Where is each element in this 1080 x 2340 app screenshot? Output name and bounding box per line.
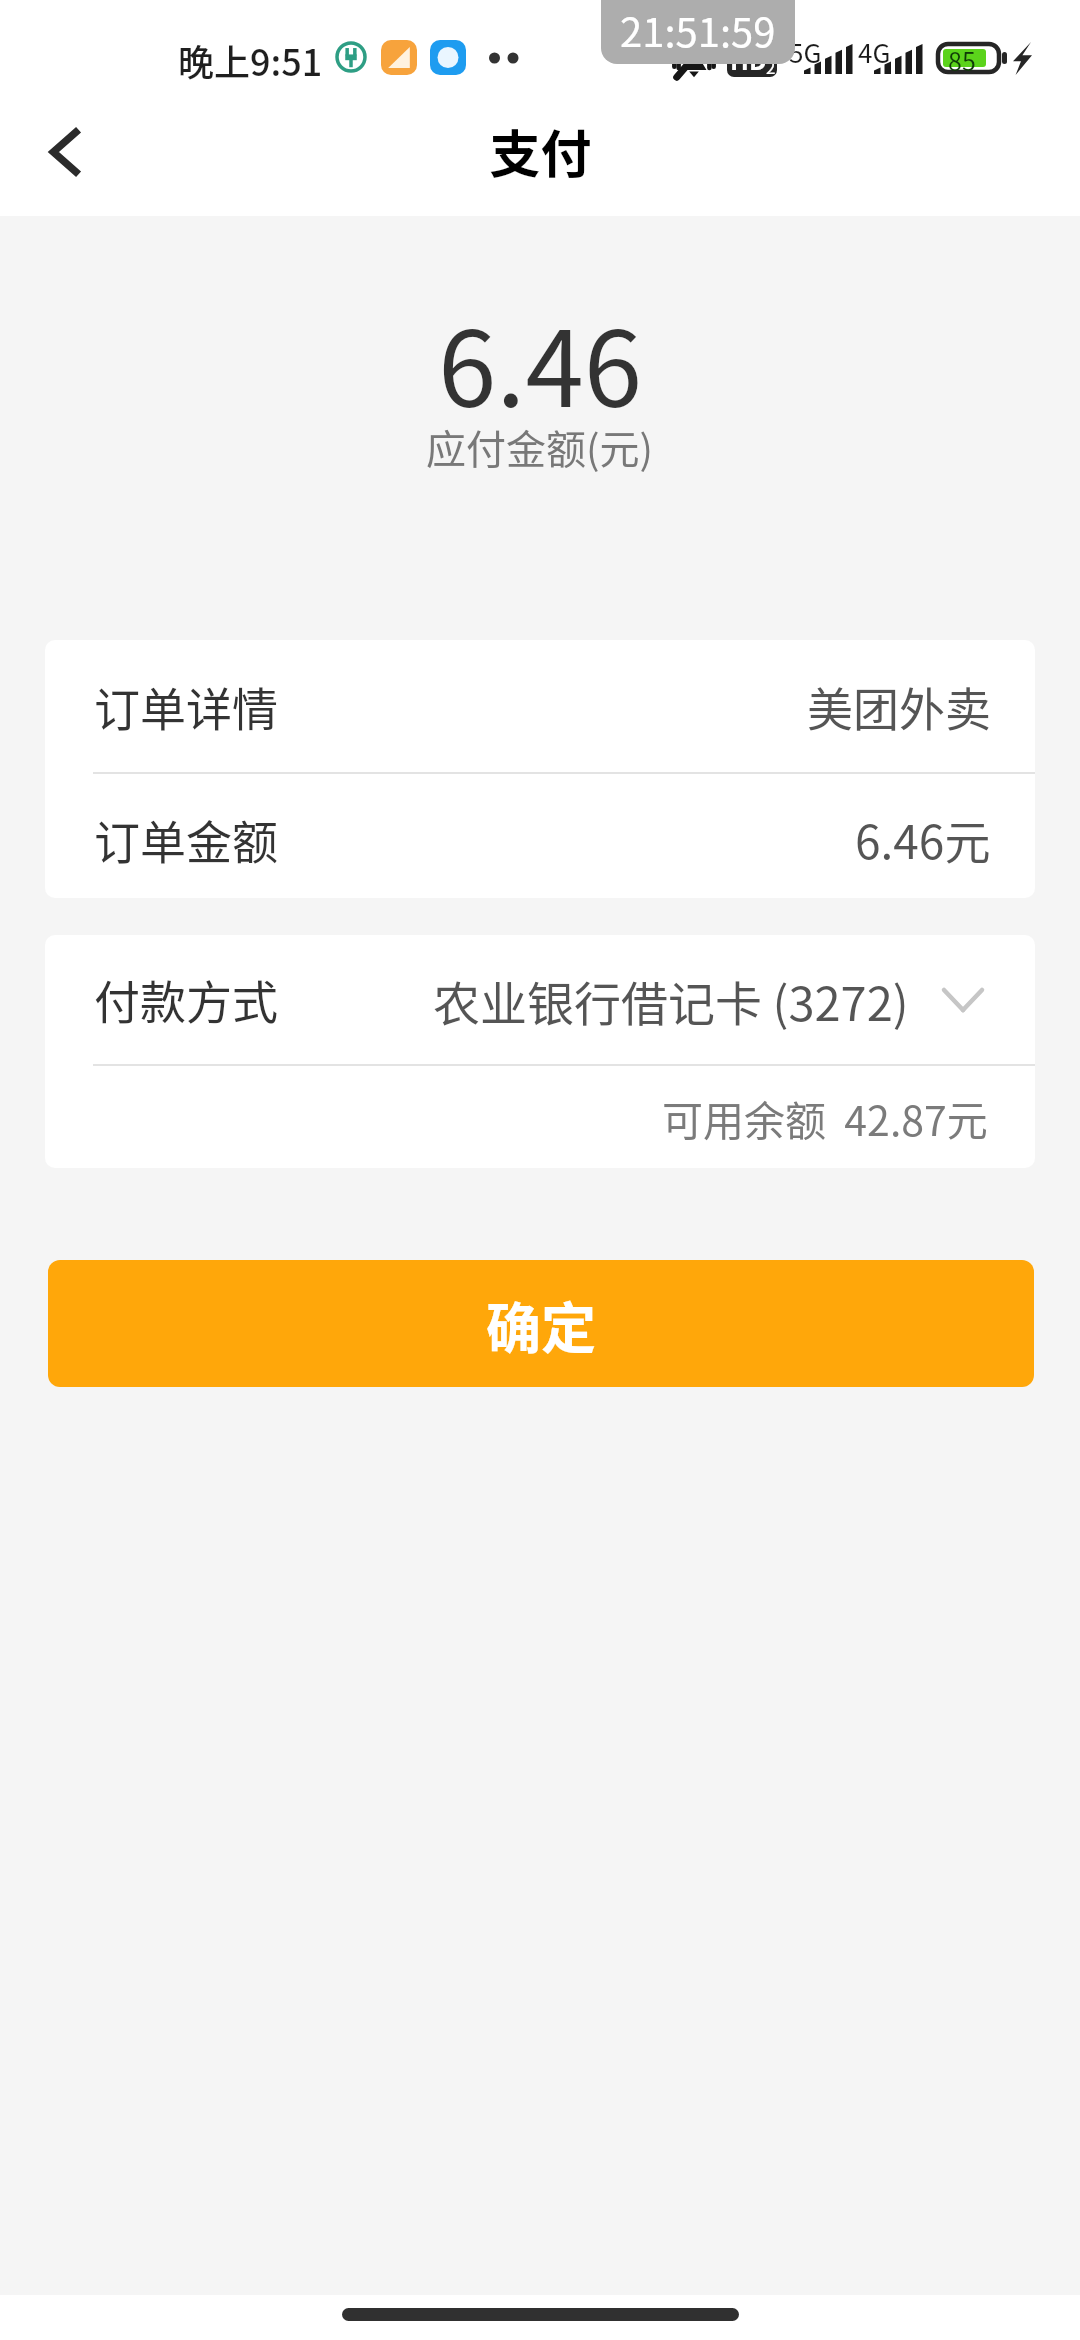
- staticText: 85: [948, 42, 976, 72]
- button[interactable]: Back: [9, 97, 119, 207]
- staticText: 确定: [486, 1284, 597, 1364]
- staticText: 2: [766, 54, 776, 77]
- button[interactable]: 订单金额: [45, 774, 1035, 898]
- staticText: HD: [730, 41, 767, 77]
- staticText: 1: [766, 41, 776, 64]
- staticText: 应付金额(元): [426, 418, 654, 474]
- staticText: 21:51:59: [620, 1, 776, 59]
- staticText: 美团外卖: [807, 673, 991, 740]
- staticText: 5G: [789, 33, 822, 71]
- staticText: 可用余额 42.87元: [662, 1088, 988, 1147]
- staticText: 6.46: [438, 285, 643, 437]
- staticText: 订单详情: [94, 673, 278, 740]
- button[interactable]: 付款方式: [45, 935, 1035, 1064]
- staticText: 订单金额: [94, 806, 278, 873]
- button[interactable]: 确定: [48, 1260, 1034, 1387]
- staticText: 农业银行借记卡 (3272): [433, 966, 909, 1034]
- staticText: 6.46元: [855, 806, 991, 873]
- staticText: 4G: [858, 33, 891, 71]
- staticText: 晚上9:51: [178, 34, 323, 86]
- staticText: 支付: [489, 114, 592, 188]
- staticText: 付款方式: [94, 966, 278, 1033]
- button[interactable]: 订单详情: [45, 640, 1035, 772]
